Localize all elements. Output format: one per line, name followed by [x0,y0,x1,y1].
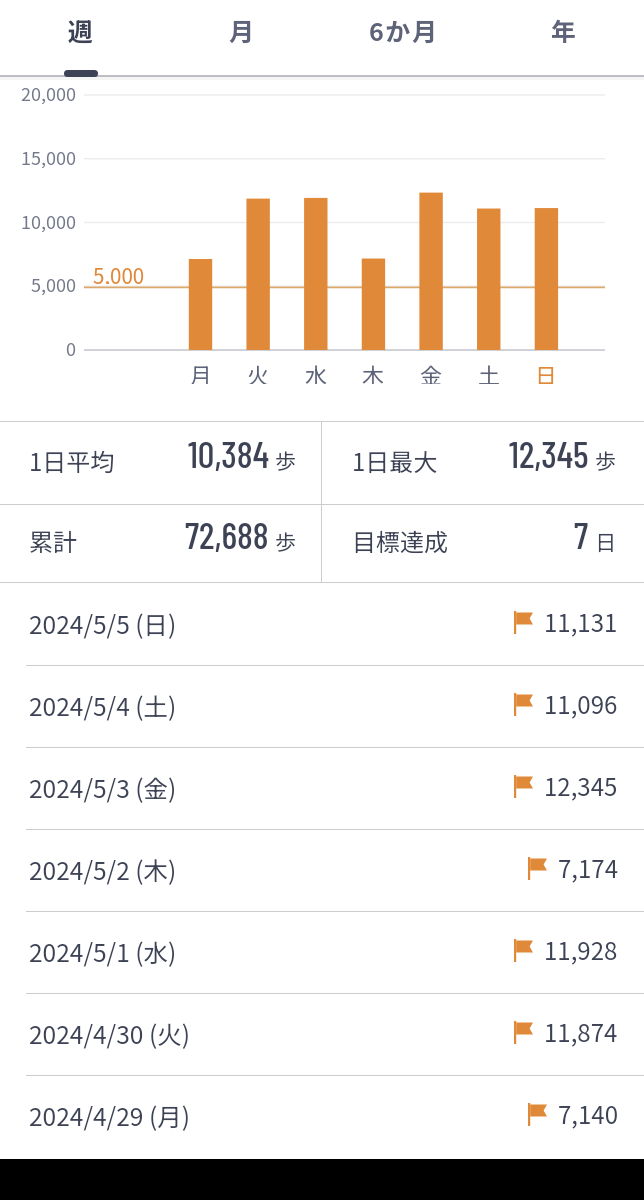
staticText: 11,874 [544,1014,618,1049]
staticText: 歩 [275,445,296,475]
staticText: 2024/5/5 (日) [29,606,177,641]
button[interactable]: 2024/5/1 (水) [0,911,644,993]
other: Goal achieved [528,1103,547,1126]
staticText: 目標達成 [352,523,448,558]
staticText: 水 [305,358,328,384]
staticText: 72,688 [185,512,269,556]
staticText: 10,384 [188,431,269,475]
staticText: 金 [420,358,443,384]
staticText: 歩 [595,445,616,475]
staticText: 1日最大 [352,443,438,478]
staticText: 20,000 [21,80,76,104]
button[interactable]: 2024/4/29 (月) [0,1075,644,1157]
staticText: 11,928 [544,932,618,967]
staticText: 7,140 [558,1096,618,1131]
staticText: 木 [362,358,385,384]
button[interactable]: 2024/5/5 (日) [0,583,644,665]
button[interactable]: 1日最大 [322,422,644,504]
staticText: 2024/4/30 (火) [29,1016,190,1051]
staticText: 年 [551,12,577,48]
other: Goal achieved [514,611,533,634]
button[interactable]: 1日平均 [0,422,321,504]
button[interactable]: 月 [161,0,322,75]
staticText: 日 [535,358,558,384]
staticText: 2024/5/4 (土) [29,688,177,723]
staticText: 7,174 [558,850,618,885]
staticText: 11,131 [544,604,618,639]
staticText: 週 [68,12,94,48]
staticText: 2024/4/29 (月) [29,1098,190,1133]
other: Goal achieved [528,857,547,880]
other: Goal achieved [514,775,533,798]
button[interactable]: 6か月 [322,0,483,75]
staticText: 月 [229,12,255,48]
staticText: 15,000 [21,144,76,168]
staticText: 0 [66,335,76,359]
staticText: 5,000 [93,260,145,284]
button[interactable]: 目標達成 [322,505,644,582]
staticText: 6か月 [369,12,439,48]
button[interactable]: 2024/4/30 (火) [0,993,644,1075]
button[interactable]: 年 [483,0,644,75]
staticText: 累計 [29,523,77,558]
staticText: 10,000 [21,208,76,232]
button[interactable]: 2024/5/2 (木) [0,829,644,911]
staticText: 2024/5/1 (水) [29,934,177,969]
other: Goal achieved [514,1021,533,1044]
button[interactable]: 週 [0,0,161,75]
staticText: 日 [595,526,616,556]
staticText: 1日平均 [29,443,115,478]
button[interactable]: 2024/5/3 (金) [0,747,644,829]
staticText: 2024/5/2 (木) [29,852,177,887]
staticText: 土 [478,358,501,384]
staticText: 月 [190,358,213,384]
other: Goal achieved [514,939,533,962]
staticText: 歩 [275,526,296,556]
staticText: 7 [574,512,589,556]
staticText: 12,345 [544,768,618,803]
button[interactable]: 累計 [0,505,321,582]
staticText: 5,000 [31,271,76,295]
staticText: 12,345 [509,431,589,475]
staticText: 火 [247,358,270,384]
staticText: 2024/5/3 (金) [29,770,177,805]
other: Goal achieved [514,693,533,716]
button[interactable]: 2024/5/4 (土) [0,665,644,747]
staticText: 11,096 [544,686,618,721]
